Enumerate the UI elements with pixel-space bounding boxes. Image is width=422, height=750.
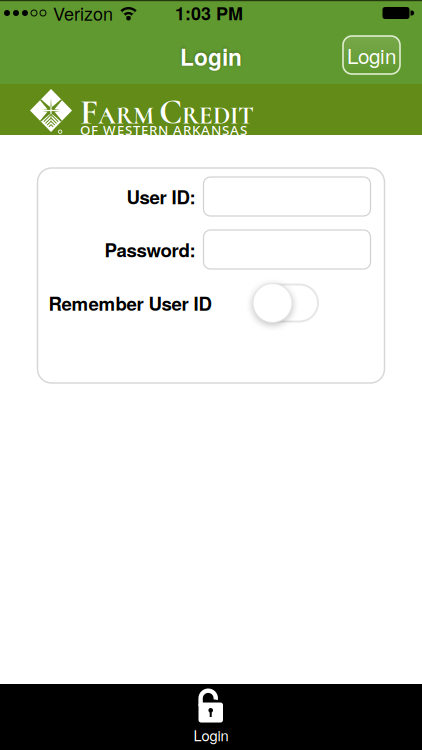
button[interactable]: Login — [171, 686, 251, 748]
staticText: Remember User ID — [48, 290, 211, 316]
button[interactable]: Login — [343, 36, 400, 74]
button[interactable]: User ID text field — [203, 177, 370, 216]
staticText: O F W E S T E R N A R K A N S A S — [80, 121, 247, 139]
button[interactable]: Password text field — [203, 230, 370, 269]
staticText: User ID: — [126, 183, 195, 210]
staticText: Login — [347, 40, 396, 70]
staticText: 1:03 PM — [175, 0, 243, 26]
staticText: Login — [180, 40, 242, 73]
staticText: FARM CREDIT — [80, 92, 254, 133]
staticText: Login — [193, 724, 228, 745]
button[interactable]: Remember User ID toggle — [252, 283, 318, 323]
staticText: Password: — [104, 236, 195, 263]
staticText: Verizon — [53, 0, 113, 26]
